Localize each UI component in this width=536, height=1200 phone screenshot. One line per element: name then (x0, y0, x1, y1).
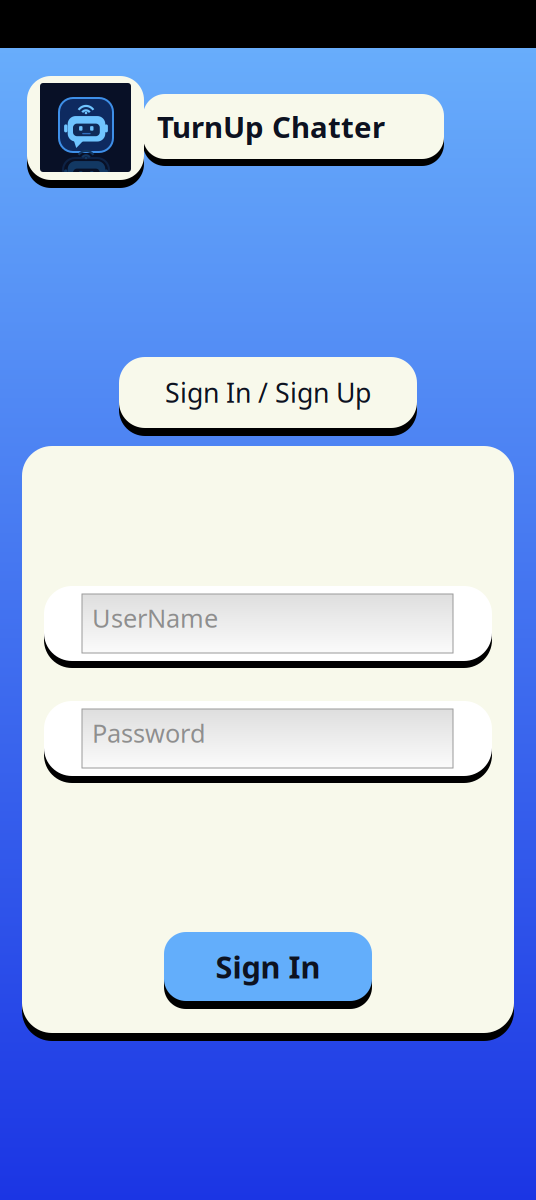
staticText: TurnUp Chatter (157, 107, 385, 146)
button[interactable]: Password (44, 701, 496, 785)
staticText: Password (92, 716, 206, 750)
button[interactable]: Sign In / Sign Up (119, 357, 425, 439)
button[interactable]: TurnUp Chatter (143, 94, 453, 168)
button[interactable]: TurnUp Chatter app icon (27, 76, 147, 190)
staticText: Sign In / Sign Up (165, 375, 371, 410)
button[interactable]: UserName (44, 586, 496, 670)
button[interactable]: Sign In (164, 932, 378, 1012)
staticText: Sign In (215, 946, 320, 987)
staticText: UserName (92, 601, 218, 635)
